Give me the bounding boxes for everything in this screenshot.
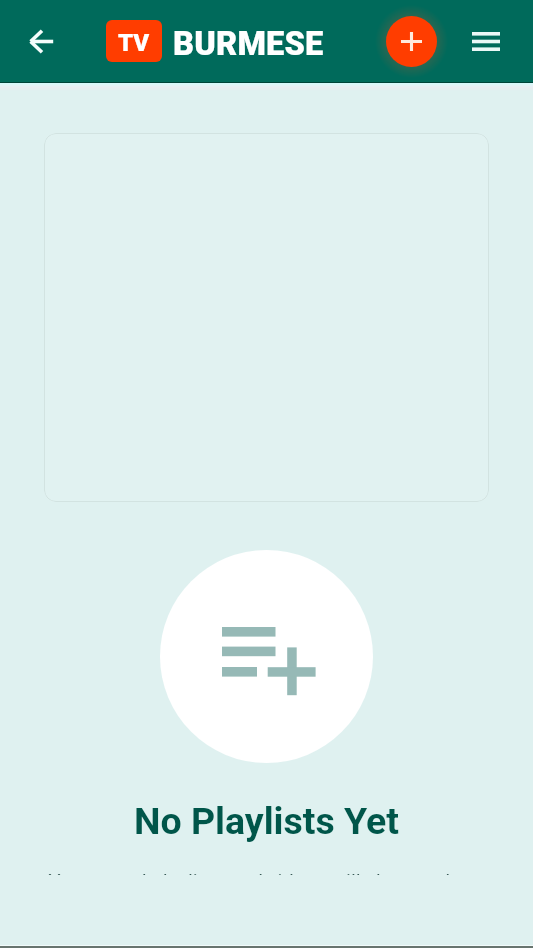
staticText: BURMESE bbox=[173, 25, 324, 63]
button[interactable]: Back bbox=[18, 18, 65, 65]
button[interactable]: Menu bbox=[462, 18, 509, 65]
button[interactable]: Add bbox=[386, 16, 437, 67]
staticText: Your saved playlists and videos will sho… bbox=[20, 873, 513, 875]
staticText: No Playlists Yet bbox=[0, 799, 533, 843]
staticText: TV bbox=[118, 29, 150, 57]
button[interactable]: TV bbox=[106, 20, 324, 62]
